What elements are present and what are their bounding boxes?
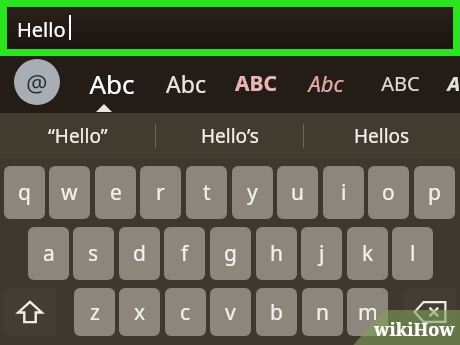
button[interactable]: Backspace xyxy=(404,288,456,336)
staticText: t xyxy=(203,178,211,207)
button[interactable]: t xyxy=(186,166,227,219)
button[interactable]: w xyxy=(49,166,90,219)
staticText: o xyxy=(382,178,395,207)
staticText: ABC xyxy=(447,70,460,97)
staticText: u xyxy=(291,178,304,207)
staticText: ABC xyxy=(381,70,420,97)
button[interactable]: Abc xyxy=(78,62,146,104)
button[interactable]: Abc xyxy=(152,62,220,104)
button[interactable]: c xyxy=(165,288,206,336)
button[interactable]: m xyxy=(347,288,388,336)
staticText: @ xyxy=(26,66,48,99)
staticText: c xyxy=(180,298,191,327)
button[interactable]: Hello xyxy=(7,7,453,49)
button[interactable]: e xyxy=(95,166,136,219)
staticText: j xyxy=(319,239,325,268)
staticText: Hello xyxy=(17,16,66,43)
staticText: r xyxy=(156,178,165,207)
button[interactable]: Emoji and symbols xyxy=(14,59,60,105)
button[interactable]: s xyxy=(73,227,114,280)
button[interactable]: f xyxy=(164,227,205,280)
button[interactable]: j xyxy=(301,227,342,280)
button[interactable]: ABC xyxy=(222,62,290,104)
button[interactable]: x xyxy=(119,288,160,336)
button[interactable]: k xyxy=(347,227,388,280)
button[interactable]: b xyxy=(256,288,297,336)
staticText: Abc xyxy=(89,66,135,101)
button[interactable]: h xyxy=(256,227,297,280)
staticText: a xyxy=(43,239,55,268)
button[interactable]: a xyxy=(28,227,69,280)
staticText: h xyxy=(270,239,283,268)
button[interactable]: u xyxy=(277,166,318,219)
staticText: l xyxy=(410,239,416,268)
button[interactable]: p xyxy=(414,166,455,219)
staticText: n xyxy=(316,298,329,327)
staticText: g xyxy=(224,239,237,268)
button[interactable]: g xyxy=(210,227,251,280)
button[interactable]: l xyxy=(392,227,433,280)
staticText: x xyxy=(134,298,146,327)
button[interactable]: Hello’s xyxy=(156,113,304,159)
button[interactable]: “Hello” xyxy=(0,113,155,159)
staticText: f xyxy=(181,239,189,268)
button[interactable]: ABC xyxy=(366,62,434,104)
staticText: z xyxy=(90,298,100,327)
staticText: Hello’s xyxy=(201,123,259,149)
staticText: d xyxy=(133,239,146,268)
staticText: i xyxy=(341,178,347,207)
staticText: Abc xyxy=(308,68,344,98)
button[interactable]: i xyxy=(323,166,364,219)
staticText: e xyxy=(110,178,122,207)
staticText: Hellos xyxy=(354,123,410,149)
button[interactable]: r xyxy=(140,166,181,219)
button[interactable]: n xyxy=(302,288,343,336)
button[interactable]: Shift xyxy=(4,288,56,336)
staticText: Abc xyxy=(166,68,206,99)
staticText: wikiHow xyxy=(374,317,455,342)
staticText: y xyxy=(247,178,258,207)
button[interactable]: y xyxy=(232,166,273,219)
button[interactable]: d xyxy=(119,227,160,280)
staticText: w xyxy=(61,178,78,207)
staticText: v xyxy=(225,298,236,327)
button[interactable]: Abc xyxy=(292,62,360,104)
staticText: ABC xyxy=(235,69,277,98)
staticText: m xyxy=(358,298,378,327)
staticText: p xyxy=(428,178,441,207)
staticText: q xyxy=(18,178,31,207)
button[interactable]: Hellos xyxy=(304,113,460,159)
staticText: b xyxy=(270,298,283,327)
staticText: “Hello” xyxy=(48,123,108,149)
button[interactable]: ABC xyxy=(432,62,460,104)
button[interactable]: q xyxy=(4,166,45,219)
staticText: s xyxy=(88,239,99,268)
staticText: k xyxy=(362,239,374,268)
button[interactable]: v xyxy=(210,288,251,336)
button[interactable]: o xyxy=(368,166,409,219)
button[interactable]: z xyxy=(74,288,115,336)
